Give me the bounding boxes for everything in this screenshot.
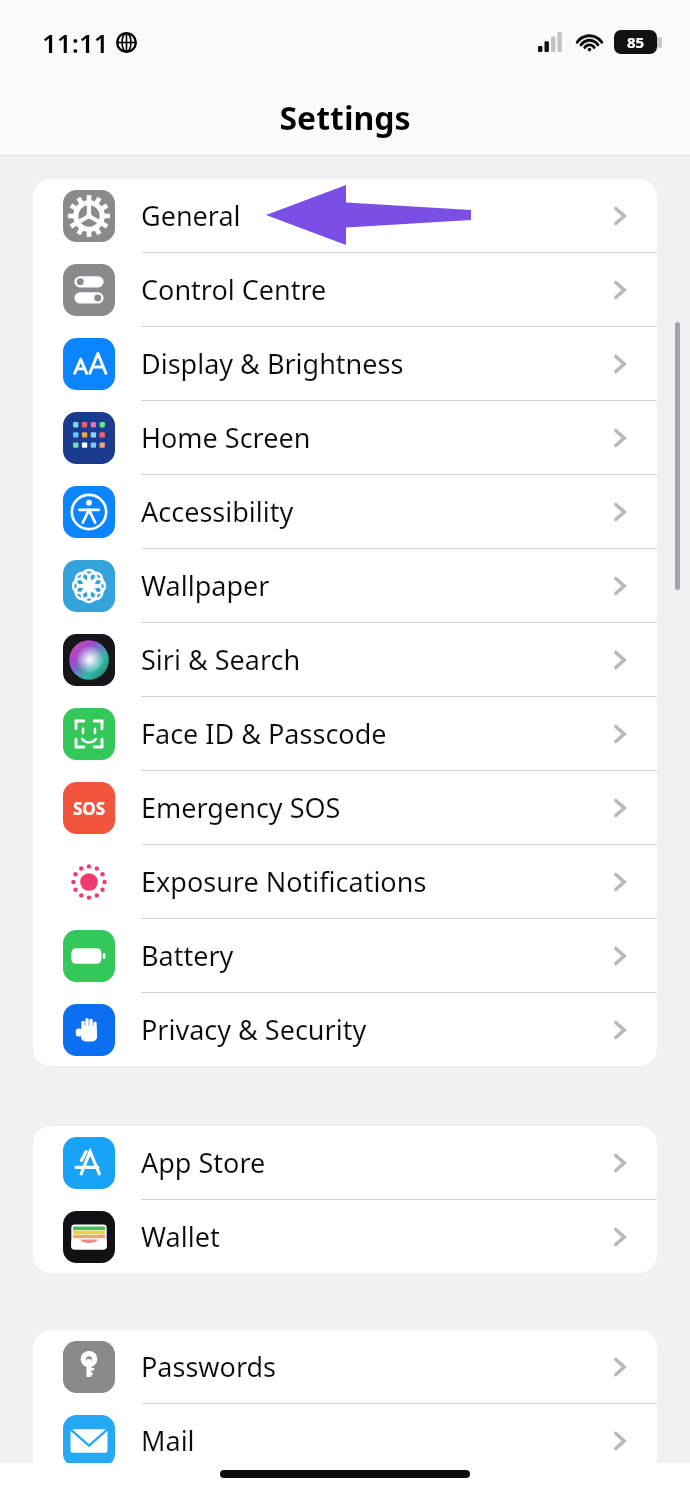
button[interactable]: Accessibility <box>33 475 657 549</box>
button[interactable]: Siri & Search <box>33 623 657 697</box>
staticText: Accessibility <box>141 493 605 530</box>
staticText: Settings <box>0 96 690 140</box>
button[interactable]: Face ID & Passcode <box>33 697 657 771</box>
staticText: Display & Brightness <box>141 345 605 382</box>
button[interactable]: Exposure Notifications <box>33 845 657 919</box>
staticText: Mail <box>141 1422 605 1459</box>
staticText: 85 <box>627 32 645 52</box>
staticText: Privacy & Security <box>141 1011 605 1048</box>
staticText: Emergency SOS <box>141 789 605 826</box>
button[interactable]: Wallpaper <box>33 549 657 623</box>
staticText: Siri & Search <box>141 641 605 678</box>
staticText: App Store <box>141 1144 605 1181</box>
staticText: General <box>141 197 605 234</box>
staticText: Wallet <box>141 1218 605 1255</box>
staticText: Wallpaper <box>141 567 605 604</box>
staticText: Passwords <box>141 1348 605 1385</box>
button[interactable]: Battery <box>33 919 657 993</box>
button[interactable]: SOS <box>33 771 657 845</box>
staticText: 11:11 <box>42 25 109 60</box>
staticText: SOS <box>73 797 106 820</box>
button[interactable]: Mail <box>33 1404 657 1478</box>
button[interactable]: General <box>33 179 657 253</box>
staticText: Face ID & Passcode <box>141 715 605 752</box>
button[interactable]: Home Screen <box>33 401 657 475</box>
button[interactable]: App Store <box>33 1126 657 1200</box>
button[interactable]: Privacy & Security <box>33 993 657 1066</box>
button[interactable]: Control Centre <box>33 253 657 327</box>
button[interactable]: Passwords <box>33 1330 657 1404</box>
staticText: Exposure Notifications <box>141 863 605 900</box>
staticText: Battery <box>141 937 605 974</box>
button[interactable]: Wallet <box>33 1200 657 1273</box>
button[interactable]: Display & Brightness <box>33 327 657 401</box>
staticText: Control Centre <box>141 271 605 308</box>
staticText: Home Screen <box>141 419 605 456</box>
